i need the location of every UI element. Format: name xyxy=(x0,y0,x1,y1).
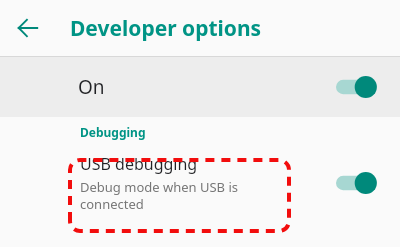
staticText: Debug mode when USB is connected xyxy=(80,178,290,213)
staticText: USB debugging xyxy=(80,153,198,175)
staticText: Developer options xyxy=(70,14,262,43)
button[interactable]: USB debugging xyxy=(0,147,400,219)
button[interactable]: Toggle xyxy=(336,168,382,198)
button[interactable]: On xyxy=(0,57,400,117)
staticText: Debugging xyxy=(80,124,146,140)
button[interactable]: Toggle xyxy=(336,72,382,102)
staticText: On xyxy=(78,74,105,100)
button[interactable]: Back xyxy=(12,12,44,44)
